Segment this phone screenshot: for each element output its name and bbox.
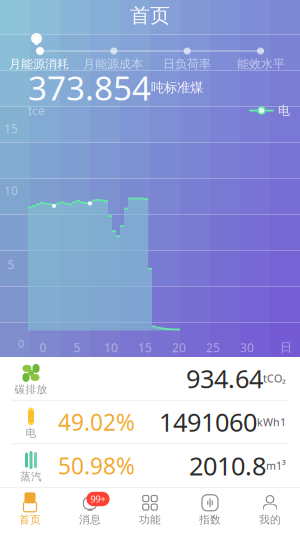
- staticText: tCO₂: [263, 371, 286, 385]
- staticText: 1491060: [159, 405, 257, 439]
- button[interactable]: 能效水平: [224, 56, 298, 72]
- staticText: 25: [206, 339, 220, 355]
- staticText: 电: [274, 103, 290, 118]
- staticText: 首页: [19, 513, 41, 526]
- staticText: 5: [7, 256, 14, 272]
- button[interactable]: 我的: [240, 488, 300, 533]
- button[interactable]: 功能: [120, 488, 180, 533]
- staticText: 373.854: [28, 65, 151, 110]
- staticText: 934.64: [186, 362, 263, 395]
- staticText: 日: [280, 340, 292, 355]
- button[interactable]: 日负荷率: [150, 56, 224, 72]
- staticText: 吨标准煤: [151, 79, 203, 96]
- button[interactable]: 碳排放: [0, 357, 300, 400]
- button[interactable]: 指数: [180, 488, 240, 533]
- button[interactable]: 月能源成本: [76, 56, 150, 72]
- button[interactable]: 电: [0, 400, 300, 443]
- staticText: 能效水平: [237, 57, 285, 71]
- staticText: 10: [104, 339, 118, 355]
- button[interactable]: 蒸汽: [0, 444, 300, 487]
- button[interactable]: 月能源消耗: [2, 56, 76, 72]
- staticText: 10: [4, 182, 18, 198]
- staticText: kWh1: [257, 415, 286, 429]
- staticText: 20: [172, 339, 186, 355]
- staticText: 电: [25, 426, 36, 439]
- staticText: m1³: [266, 458, 286, 473]
- staticText: 指数: [199, 513, 221, 526]
- staticText: 消息: [79, 513, 101, 526]
- staticText: 月能源成本: [83, 57, 143, 71]
- button[interactable]: 消息: [60, 488, 120, 533]
- staticText: 蒸汽: [20, 470, 42, 483]
- staticText: 我的: [259, 513, 281, 526]
- staticText: tce: [28, 102, 45, 118]
- button[interactable]: 首页: [0, 488, 60, 533]
- staticText: 碳排放: [14, 383, 47, 396]
- staticText: 0: [39, 339, 46, 355]
- staticText: 50.98%: [58, 450, 135, 481]
- staticText: 5: [73, 339, 80, 355]
- staticText: 30: [240, 339, 254, 355]
- staticText: 15: [138, 339, 152, 355]
- staticText: 99+: [90, 493, 105, 505]
- staticText: 日负荷率: [163, 57, 211, 71]
- staticText: 15: [4, 120, 18, 136]
- staticText: 功能: [139, 513, 161, 526]
- staticText: 首页: [130, 3, 170, 28]
- staticText: 49.02%: [58, 407, 135, 437]
- staticText: 月能源消耗: [9, 57, 69, 71]
- staticText: 2010.8: [189, 449, 266, 482]
- staticText: 0: [18, 336, 24, 351]
